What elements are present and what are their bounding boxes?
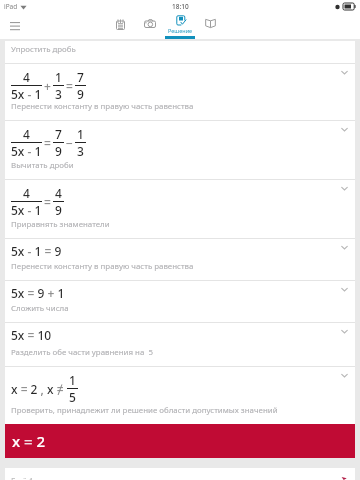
staticText: Приравнять знаменатели bbox=[11, 219, 110, 230]
staticText: Вычитать дроби bbox=[11, 160, 74, 171]
staticText: 9 bbox=[55, 143, 62, 159]
staticText: 1 bbox=[55, 69, 62, 85]
staticText: 4 bbox=[23, 126, 30, 142]
staticText: = bbox=[44, 194, 51, 210]
staticText: 9 bbox=[55, 202, 62, 218]
staticText: Проверить, принадлежит ли решение област… bbox=[11, 405, 278, 416]
staticText: 3 bbox=[77, 143, 84, 159]
button[interactable]: 5x = 9 + 1 bbox=[5, 280, 355, 322]
staticText: 5x = 10 bbox=[11, 327, 52, 343]
button[interactable]: Camera bbox=[135, 13, 165, 39]
button[interactable]: Ещё 1 шаг bbox=[5, 468, 355, 480]
button[interactable]: x = 2 bbox=[5, 424, 355, 458]
button[interactable]: 4 bbox=[5, 120, 355, 179]
staticText: = bbox=[66, 78, 73, 94]
button[interactable]: Notes bbox=[105, 13, 135, 39]
staticText: 5x - 1 = 9 bbox=[11, 243, 62, 259]
staticText: 5x - 1 bbox=[11, 86, 42, 102]
button[interactable]: Menu bbox=[3, 14, 27, 38]
staticText: Разделить обе части уравнения на 5 bbox=[11, 347, 153, 358]
staticText: 7 bbox=[77, 69, 84, 85]
staticText: 5x - 1 bbox=[11, 202, 42, 218]
staticText: 5x = 9 + 1 bbox=[11, 285, 65, 301]
staticText: Упростить дробь bbox=[11, 44, 76, 55]
staticText: 3 bbox=[55, 86, 62, 102]
staticText: + bbox=[44, 78, 51, 94]
staticText: 4 bbox=[55, 185, 62, 201]
staticText: iPad bbox=[4, 2, 18, 11]
staticText: Сложить числа bbox=[11, 303, 69, 314]
button[interactable]: 4 bbox=[5, 179, 355, 238]
staticText: 4 bbox=[23, 69, 30, 85]
staticText: 4 bbox=[23, 185, 30, 201]
staticText: 9 bbox=[77, 86, 84, 102]
staticText: 5x - 1 bbox=[11, 143, 42, 159]
button[interactable]: Решение bbox=[165, 13, 195, 39]
staticText: Ещё 1 шаг bbox=[11, 476, 51, 480]
staticText: x = 2 bbox=[12, 431, 46, 451]
staticText: Перенести константу в правую часть равен… bbox=[11, 101, 194, 112]
staticText: 5 bbox=[69, 389, 76, 405]
staticText: 18:10 bbox=[172, 2, 189, 11]
button[interactable]: 4 bbox=[5, 63, 355, 120]
staticText: Перенести константу в правую часть равен… bbox=[11, 261, 194, 272]
staticText: 1 bbox=[77, 126, 84, 142]
staticText: Решение bbox=[168, 27, 193, 34]
button[interactable]: 5x = 10 bbox=[5, 322, 355, 366]
staticText: − bbox=[66, 135, 73, 151]
staticText: 7 bbox=[55, 126, 62, 142]
staticText: x = 2 , x ≠ bbox=[11, 381, 64, 397]
button[interactable]: Book bbox=[195, 13, 225, 39]
button[interactable]: 5x - 1 = 9 bbox=[5, 238, 355, 280]
button[interactable]: x = 2 , x ≠ bbox=[5, 366, 355, 424]
staticText: 1 bbox=[69, 372, 76, 388]
staticText: = bbox=[44, 135, 51, 151]
